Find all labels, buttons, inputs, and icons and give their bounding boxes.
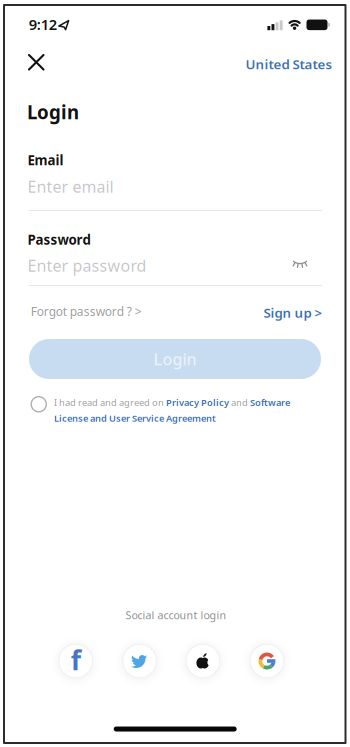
button[interactable]: Software bbox=[250, 396, 290, 409]
staticText: and bbox=[229, 396, 250, 409]
button[interactable]: Sign in with Facebook bbox=[58, 643, 93, 678]
button[interactable]: Forgot password ? > bbox=[31, 303, 142, 319]
button[interactable]: Sign in with Twitter bbox=[122, 643, 157, 678]
button[interactable]: Login bbox=[29, 339, 321, 379]
staticText: Software bbox=[250, 396, 290, 409]
button[interactable]: License and User Service Agreement bbox=[54, 412, 216, 424]
staticText: Social account login bbox=[125, 608, 226, 622]
staticText: Enter password bbox=[27, 255, 146, 276]
staticText: Password bbox=[27, 231, 90, 248]
staticText: Login bbox=[153, 348, 196, 370]
button[interactable]: Show password bbox=[292, 257, 308, 269]
button[interactable]: Sign in with Apple bbox=[185, 643, 220, 678]
button[interactable]: Privacy Policy bbox=[166, 396, 229, 409]
staticText: Forgot password ? > bbox=[31, 303, 142, 319]
staticText: License and User Service Agreement bbox=[54, 412, 216, 424]
button[interactable]: Sign up > bbox=[263, 304, 322, 321]
staticText: Privacy Policy bbox=[166, 396, 229, 409]
button[interactable]: Sign in with Google bbox=[249, 643, 284, 678]
staticText: Sign up > bbox=[263, 304, 322, 321]
staticText: I had read and agreed on bbox=[54, 396, 166, 409]
staticText: Login bbox=[27, 99, 79, 124]
staticText: 9:12 bbox=[29, 15, 57, 34]
button[interactable]: Close bbox=[28, 54, 44, 70]
staticText: f bbox=[71, 642, 81, 678]
staticText: United States bbox=[245, 55, 332, 73]
staticText: Email bbox=[27, 151, 63, 169]
button[interactable]: United States bbox=[245, 55, 332, 73]
staticText: Enter email bbox=[27, 176, 113, 197]
button[interactable]: Agree to terms bbox=[30, 396, 47, 412]
